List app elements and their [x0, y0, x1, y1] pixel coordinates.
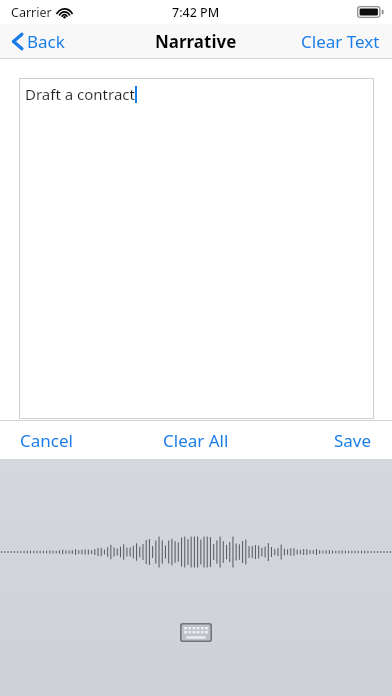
- staticText: Save: [334, 429, 372, 452]
- staticText: Narrative: [155, 30, 237, 53]
- staticText: Carrier: [11, 4, 52, 21]
- button[interactable]: Cancel: [0, 422, 93, 459]
- staticText: Back: [27, 30, 65, 53]
- button[interactable]: Show keyboard: [174, 617, 218, 648]
- staticText: Cancel: [20, 429, 73, 452]
- button[interactable]: Clear All: [143, 422, 249, 459]
- staticText: 7:42 PM: [172, 4, 220, 21]
- button[interactable]: Back: [0, 25, 77, 58]
- button[interactable]: Clear Text: [289, 25, 392, 58]
- staticText: Clear All: [163, 429, 229, 452]
- button[interactable]: Draft a contract: [19, 78, 374, 419]
- staticText: Clear Text: [301, 30, 380, 53]
- staticText: Draft a contract: [25, 84, 135, 104]
- button[interactable]: Save: [314, 422, 392, 459]
